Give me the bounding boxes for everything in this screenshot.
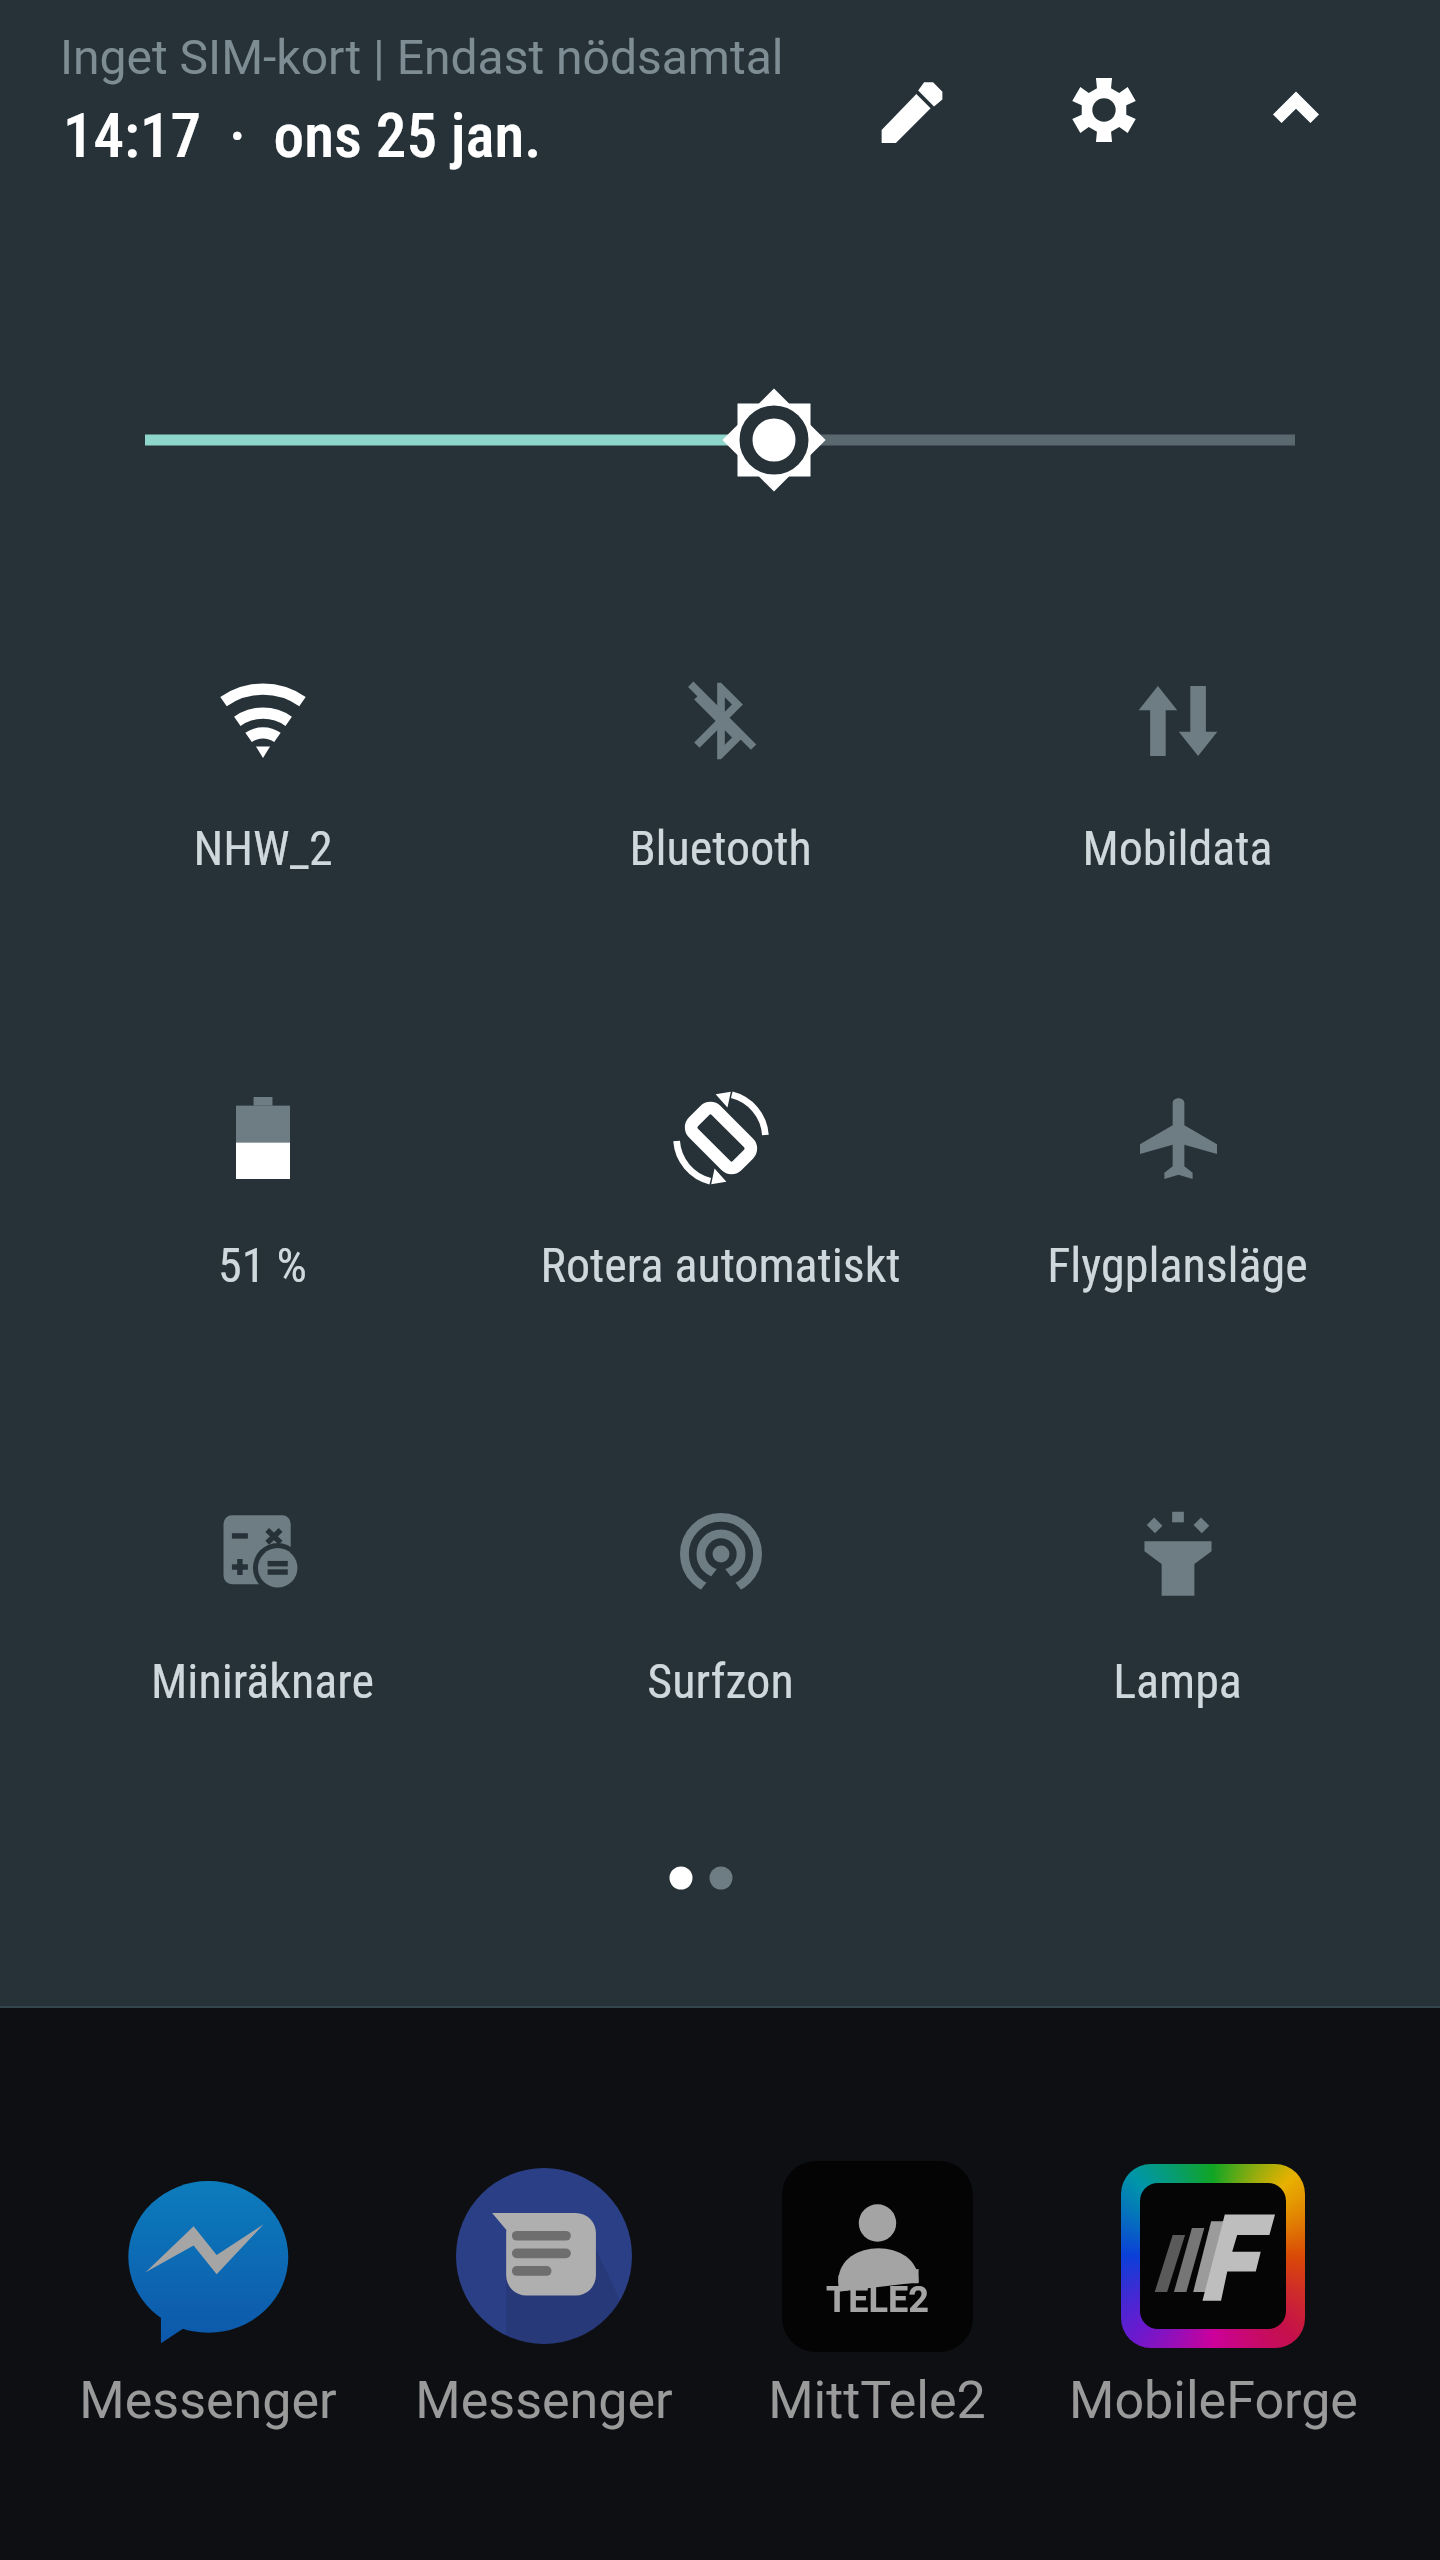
staticText: 14:17 · ons 25 jan.	[63, 100, 542, 171]
staticText: Lampa	[1113, 1653, 1242, 1709]
staticText: Surfzon	[647, 1653, 794, 1709]
button[interactable]: Flygplansläge	[949, 1028, 1406, 1368]
staticText: Flygplansläge	[1047, 1237, 1308, 1293]
staticText: Inget SIM-kort | Endast nödsamtal	[60, 29, 784, 85]
staticText: Rotera automatiskt	[540, 1237, 901, 1293]
button[interactable]: NHW_2	[34, 611, 491, 951]
staticText: MobileForge	[1069, 2370, 1358, 2431]
staticText: TELE2	[826, 2279, 929, 2321]
staticText: 51 %	[218, 1237, 307, 1293]
button[interactable]: Surfzon	[492, 1444, 949, 1784]
button[interactable]: TELE2	[709, 2160, 1045, 2450]
staticText: MittTele2	[768, 2370, 986, 2431]
button[interactable]: Lampa	[949, 1444, 1406, 1784]
button[interactable]: Collapse	[1234, 46, 1358, 170]
button[interactable]: MobileForge	[1045, 2160, 1381, 2450]
button[interactable]: Settings	[1042, 49, 1166, 173]
staticText: Bluetooth	[629, 820, 812, 876]
button[interactable]: Messenger	[40, 2160, 376, 2450]
button[interactable]: 51 %	[34, 1028, 491, 1368]
button[interactable]: Rotera automatiskt	[492, 1028, 949, 1368]
button[interactable]: Messenger	[376, 2160, 712, 2450]
button[interactable]: Mobildata	[949, 611, 1406, 951]
button[interactable]: Bluetooth	[492, 611, 949, 951]
button[interactable]: Miniräknare	[34, 1444, 491, 1784]
button[interactable]: Edit	[850, 50, 974, 174]
staticText: Messenger	[415, 2370, 673, 2431]
staticText: Mobildata	[1082, 820, 1273, 876]
staticText: Messenger	[79, 2370, 337, 2431]
staticText: NHW_2	[193, 820, 333, 876]
staticText: Miniräknare	[151, 1653, 374, 1709]
